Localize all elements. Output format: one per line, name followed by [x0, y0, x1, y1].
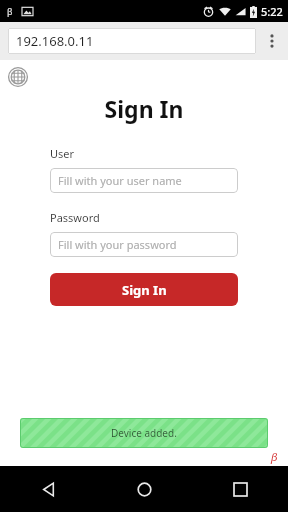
button[interactable]: Fill with your user name — [50, 168, 238, 193]
staticText: Sign In — [0, 93, 288, 124]
staticText: Sign In — [122, 281, 167, 299]
button[interactable]: Sign In — [50, 273, 238, 306]
button[interactable]: Back — [0, 466, 96, 512]
button[interactable]: Recent apps — [192, 466, 288, 512]
staticText: User — [50, 146, 75, 161]
button[interactable]: Device added. — [20, 418, 268, 448]
staticText: Fill with your password — [58, 237, 177, 252]
staticText: Device added. — [111, 426, 177, 440]
button[interactable]: More options — [256, 22, 288, 60]
staticText: β — [7, 5, 13, 17]
button[interactable]: Home — [96, 466, 192, 512]
staticText: Password — [50, 210, 100, 225]
staticText: β — [271, 449, 278, 464]
button[interactable]: 192.168.0.11 — [8, 28, 256, 54]
staticText: Fill with your user name — [58, 173, 182, 188]
staticText: 5:22 — [261, 4, 283, 19]
staticText: 192.168.0.11 — [16, 32, 94, 50]
button[interactable]: Fill with your password — [50, 232, 238, 257]
